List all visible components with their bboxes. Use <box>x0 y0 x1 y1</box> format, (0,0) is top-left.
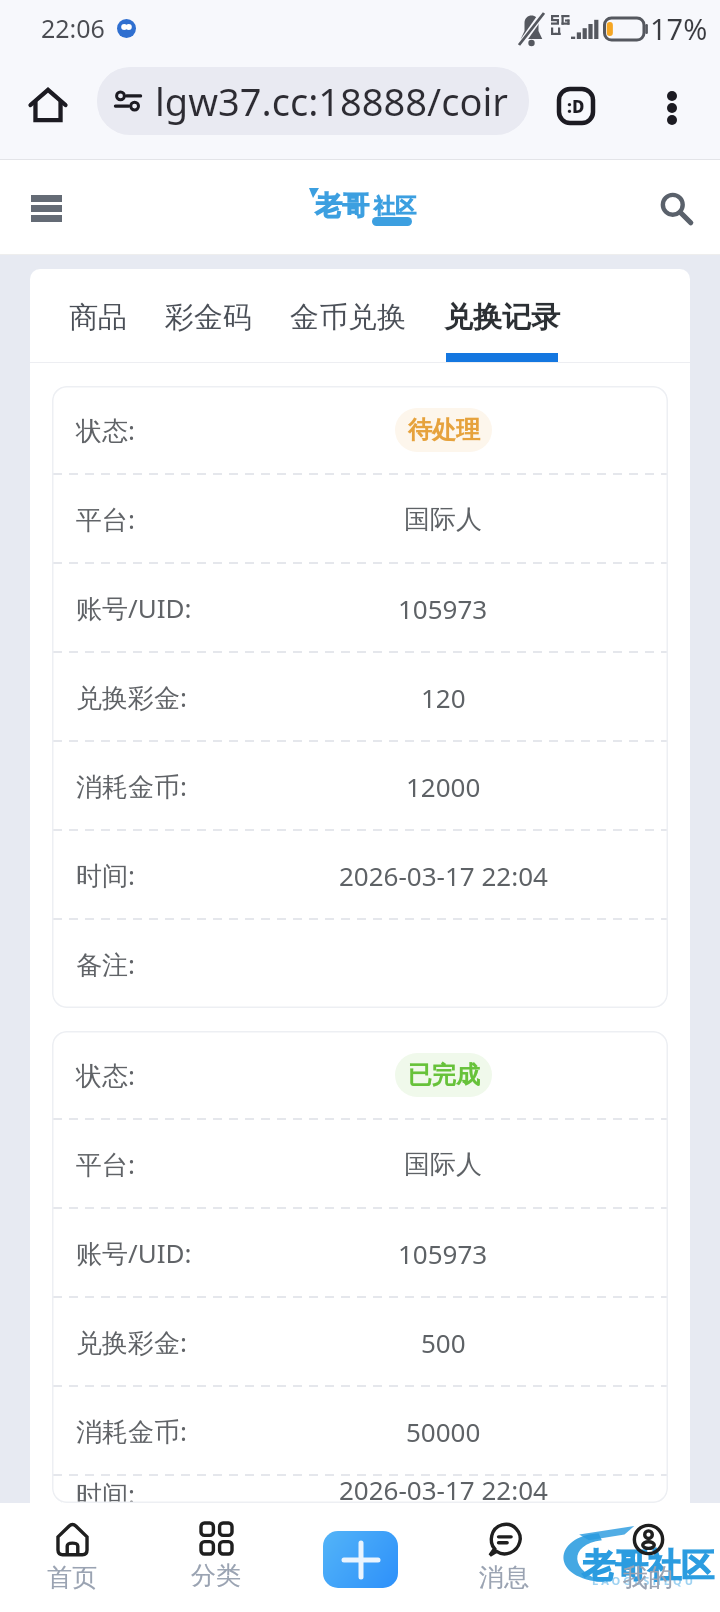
staticText: 首页 <box>47 1562 97 1593</box>
staticText: 消耗金币: <box>76 1413 187 1449</box>
button[interactable]: More options <box>644 80 700 136</box>
staticText: 商品 <box>69 299 127 336</box>
button[interactable]: Search <box>650 182 702 234</box>
staticText: 500 <box>421 1325 466 1360</box>
button[interactable]: 我的 <box>576 1503 720 1593</box>
staticText: 我的 <box>623 1562 673 1593</box>
button[interactable]: 分类 <box>144 1503 288 1591</box>
staticText: 老哥社区 <box>582 1545 714 1587</box>
staticText: 国际人 <box>404 1148 482 1181</box>
staticText: 金币兑换 <box>290 299 406 336</box>
button[interactable]: 商品 <box>69 269 127 362</box>
button[interactable]: 消息 <box>432 1503 576 1593</box>
button[interactable]: Menu <box>20 182 72 234</box>
staticText: 17% <box>650 9 708 48</box>
staticText: 12000 <box>406 769 481 804</box>
staticText: 老哥 <box>315 189 369 223</box>
staticText: 消耗金币: <box>76 768 187 804</box>
button[interactable]: Home <box>18 75 78 135</box>
staticText: 已完成 <box>408 1060 480 1090</box>
button[interactable]: 金币兑换 <box>290 269 406 362</box>
staticText: 消息 <box>479 1562 529 1593</box>
staticText: 平台: <box>76 501 135 537</box>
staticText: 2026-03-17 22:04 <box>339 858 548 893</box>
button[interactable]: lgw37.cc:18888/coir <box>97 67 529 135</box>
staticText: 120 <box>421 680 466 715</box>
staticText: lgw37.cc:18888/coir <box>155 75 508 127</box>
staticText: 兑换彩金: <box>76 1324 187 1360</box>
staticText: 状态: <box>76 1057 135 1093</box>
staticText: 平台: <box>76 1146 135 1182</box>
staticText: 22:06 <box>41 11 105 45</box>
staticText: 状态: <box>76 412 135 448</box>
staticText: :D <box>567 95 585 118</box>
staticText: 国际人 <box>404 503 482 536</box>
staticText: 账号/UID: <box>76 1235 192 1271</box>
button[interactable]: 首页 <box>0 1503 144 1593</box>
staticText: 时间: <box>76 1476 135 1503</box>
staticText: 时间: <box>76 857 135 893</box>
button[interactable]: 状态: <box>52 1031 668 1503</box>
staticText: 彩金码 <box>165 299 252 336</box>
staticText: LAOGESHEQU <box>592 1573 697 1588</box>
staticText: 兑换记录 <box>444 299 560 336</box>
button[interactable]: Add <box>323 1531 398 1588</box>
button[interactable]: 彩金码 <box>165 269 252 362</box>
staticText: 50000 <box>406 1414 481 1449</box>
button[interactable]: 状态: <box>52 386 668 1008</box>
staticText: 105973 <box>398 591 488 626</box>
staticText: 105973 <box>398 1236 488 1271</box>
staticText: 待处理 <box>408 415 480 445</box>
staticText: 社区 <box>374 193 416 219</box>
staticText: 备注: <box>76 946 135 982</box>
staticText: 账号/UID: <box>76 590 192 626</box>
staticText: 2026-03-17 22:04 <box>339 1472 548 1503</box>
button[interactable]: 兑换记录 <box>444 269 560 362</box>
staticText: 兑换彩金: <box>76 679 187 715</box>
staticText: 分类 <box>191 1560 241 1591</box>
button[interactable]: Tabs <box>548 78 604 134</box>
